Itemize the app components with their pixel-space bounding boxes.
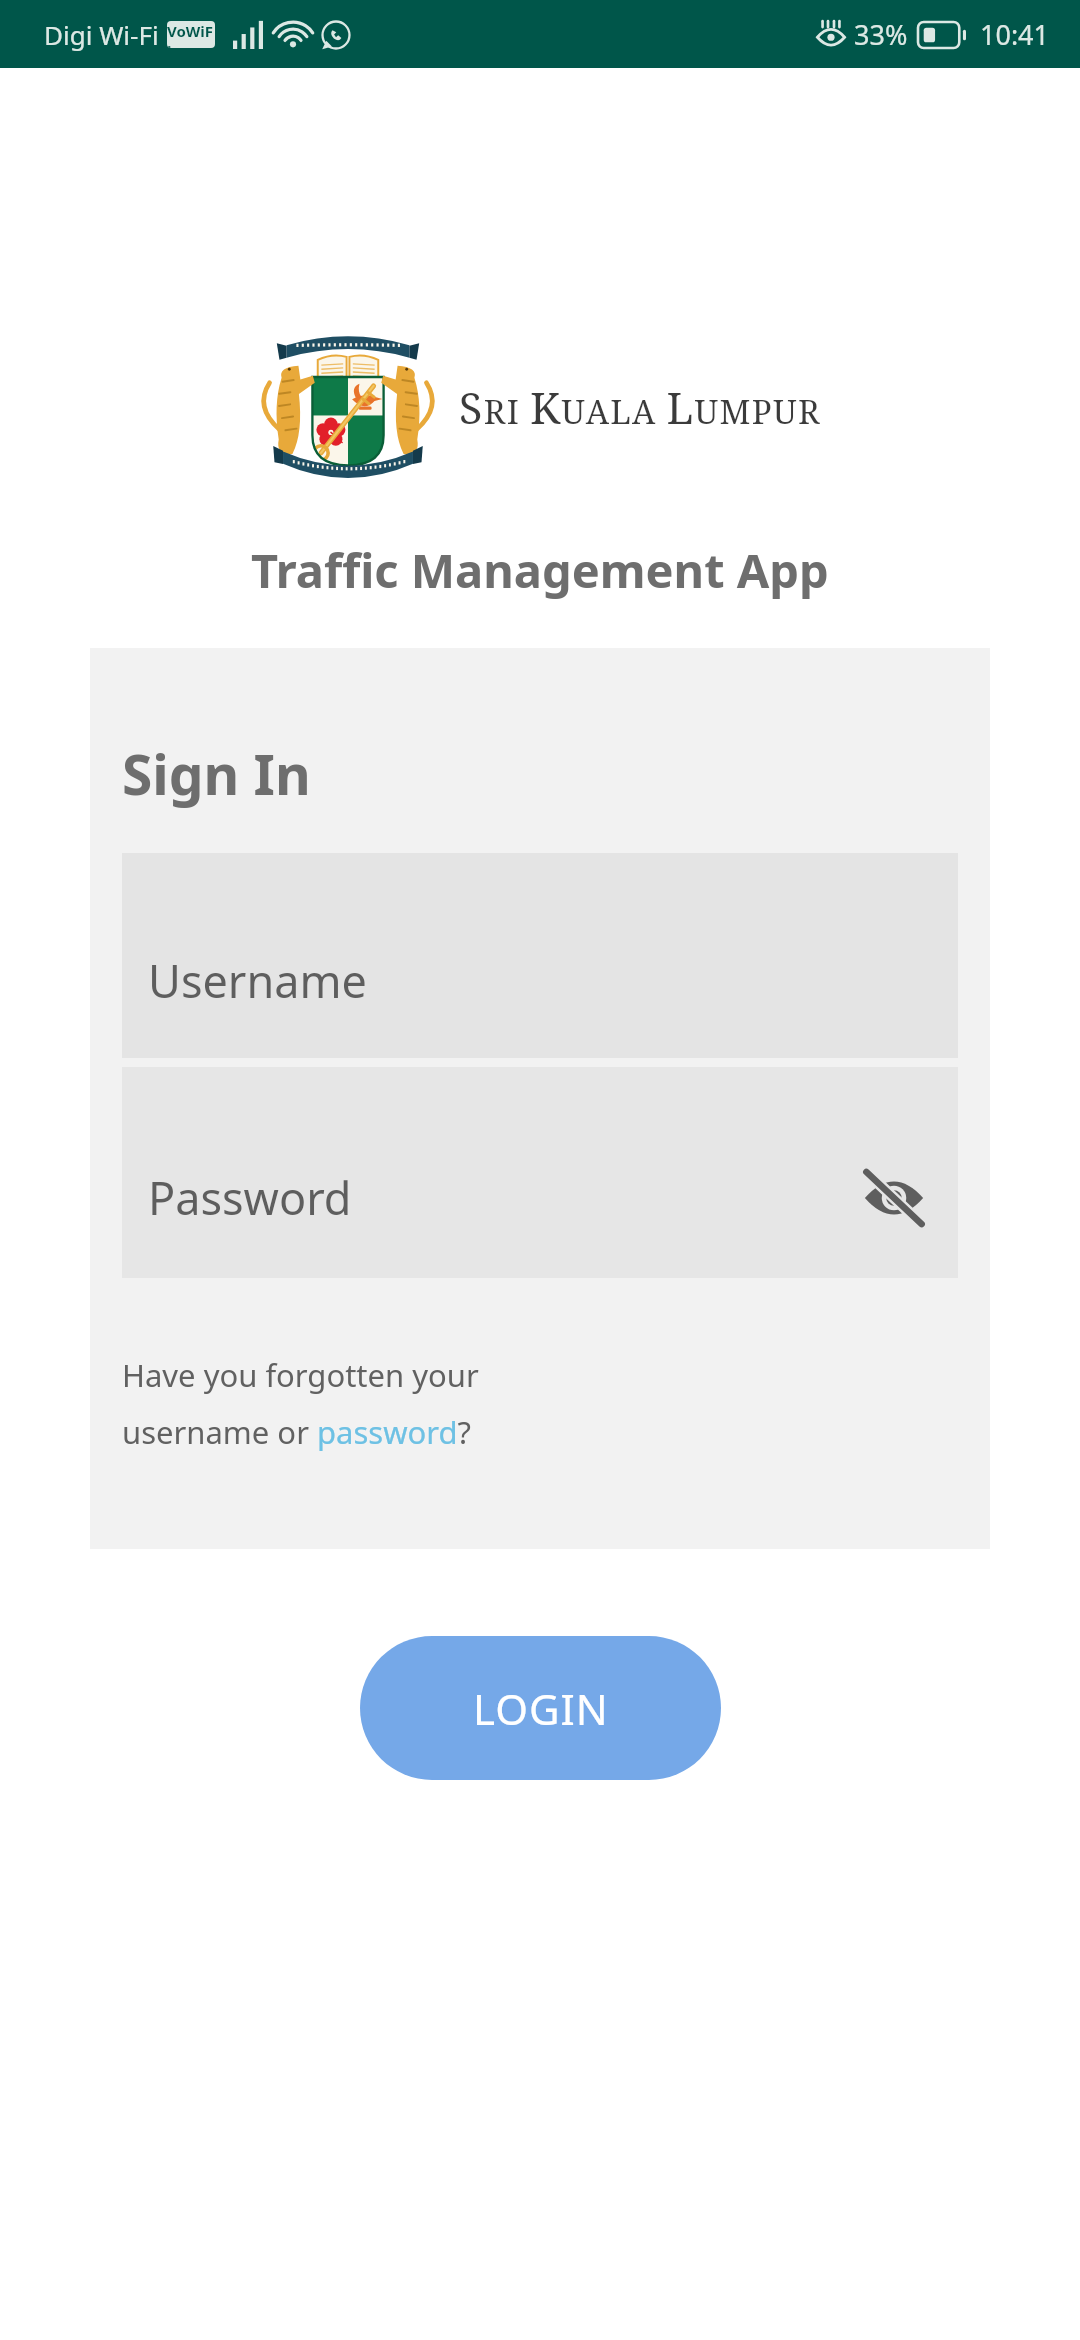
button[interactable]: LOGIN bbox=[360, 1636, 721, 1780]
button[interactable]: Password bbox=[122, 1067, 958, 1278]
staticText: SRI KUALA LUMPUR bbox=[459, 378, 821, 437]
staticText: LOGIN bbox=[473, 1680, 609, 1737]
staticText: Traffic Management App bbox=[251, 538, 829, 602]
button[interactable]: username or password? bbox=[122, 1411, 471, 1453]
staticText: Have you forgotten your bbox=[122, 1354, 479, 1396]
staticText: Password bbox=[148, 1167, 352, 1228]
staticText: Digi Wi-Fi bbox=[44, 17, 159, 52]
staticText: Username bbox=[148, 950, 367, 1011]
button[interactable]: Show password bbox=[856, 1160, 932, 1236]
staticText: 10:41 bbox=[980, 16, 1050, 53]
staticText: Sign In bbox=[122, 736, 311, 811]
button[interactable]: Username bbox=[122, 853, 958, 1058]
staticText: 33% bbox=[854, 16, 908, 53]
staticText: VoWiFi bbox=[167, 21, 215, 48]
